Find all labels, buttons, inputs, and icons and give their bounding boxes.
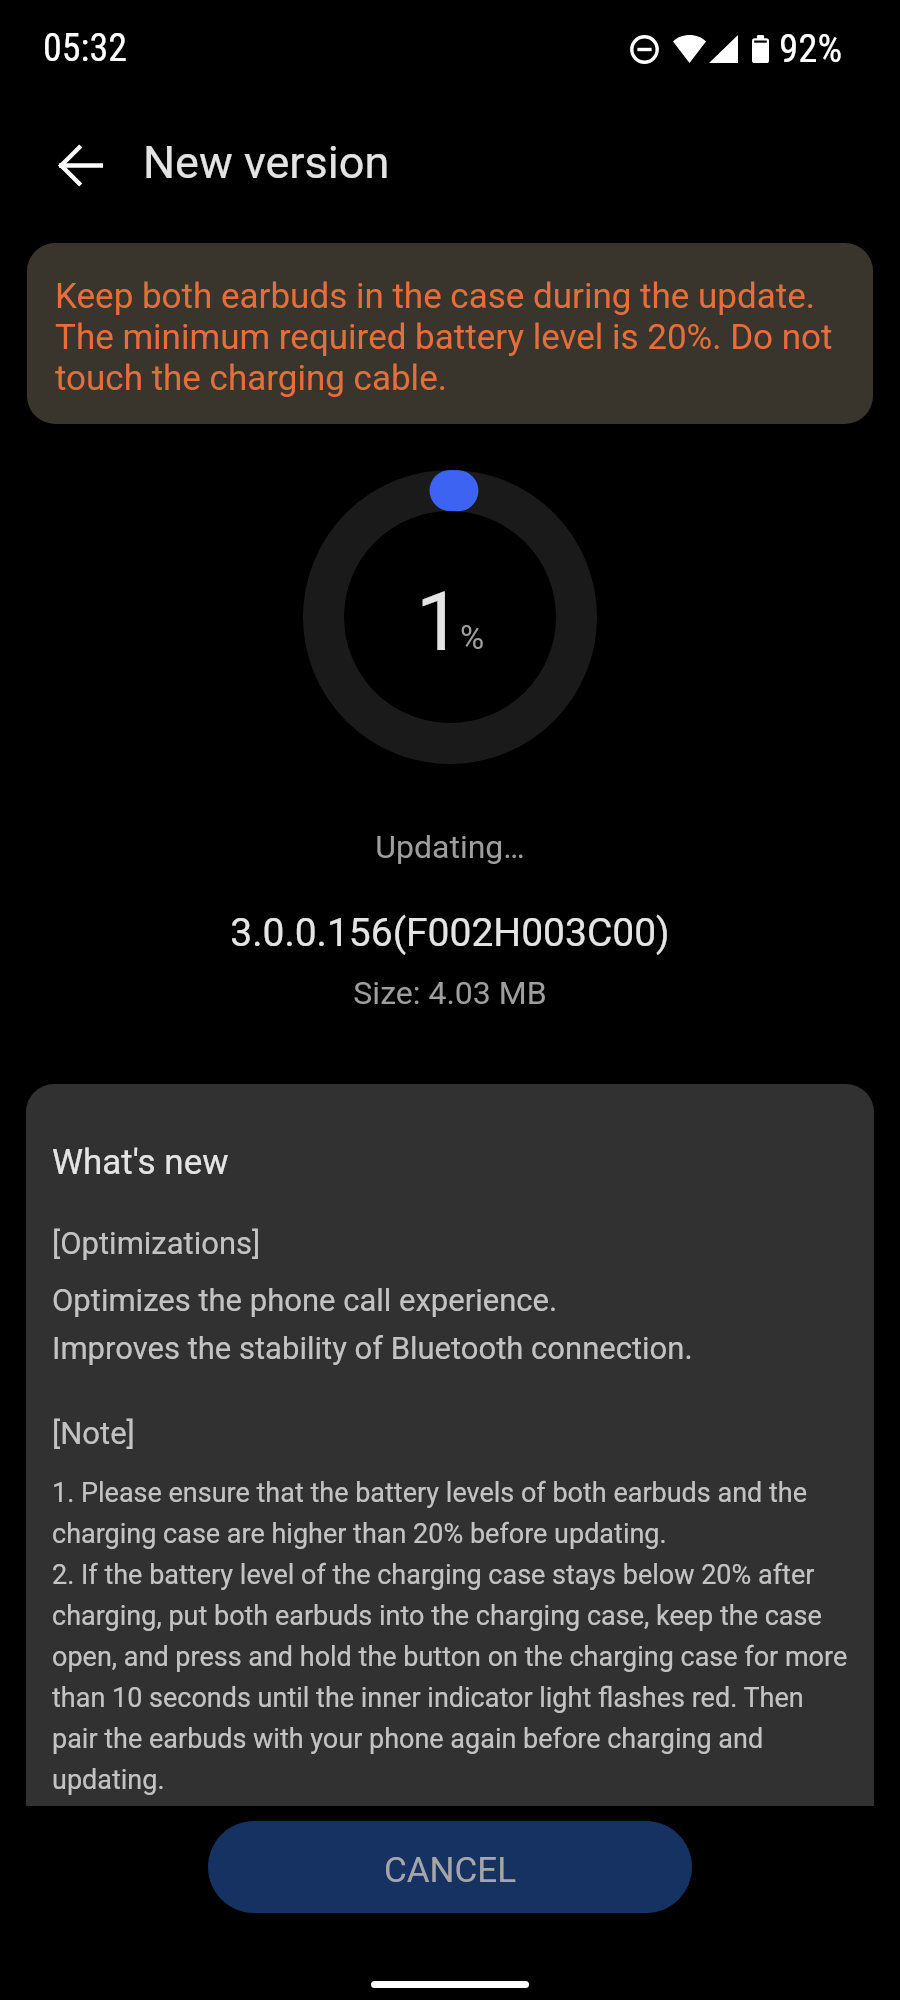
staticText: 3.0.0.156(F002H003C00) (0, 910, 900, 956)
staticText: % (460, 618, 485, 657)
staticText: [Optimizations] (52, 1225, 261, 1261)
staticText: 92% (779, 26, 843, 72)
staticText: Keep both earbuds in the case during the… (55, 276, 849, 399)
staticText: New version (143, 136, 390, 189)
button[interactable]: CANCEL (208, 1821, 692, 1913)
staticText: 05:32 (43, 26, 127, 71)
staticText: Optimizes the phone call experience. Imp… (52, 1282, 693, 1367)
staticText: Updating… (0, 828, 900, 866)
staticText: Size: 4.03 MB (0, 974, 900, 1012)
staticText: 1 (416, 575, 462, 670)
staticText: 1. Please ensure that the battery levels… (52, 1477, 848, 1796)
staticText: What's new (52, 1142, 229, 1183)
staticText: [Note] (52, 1415, 135, 1451)
button[interactable]: Back (45, 129, 117, 201)
staticText: CANCEL (384, 1850, 517, 1891)
